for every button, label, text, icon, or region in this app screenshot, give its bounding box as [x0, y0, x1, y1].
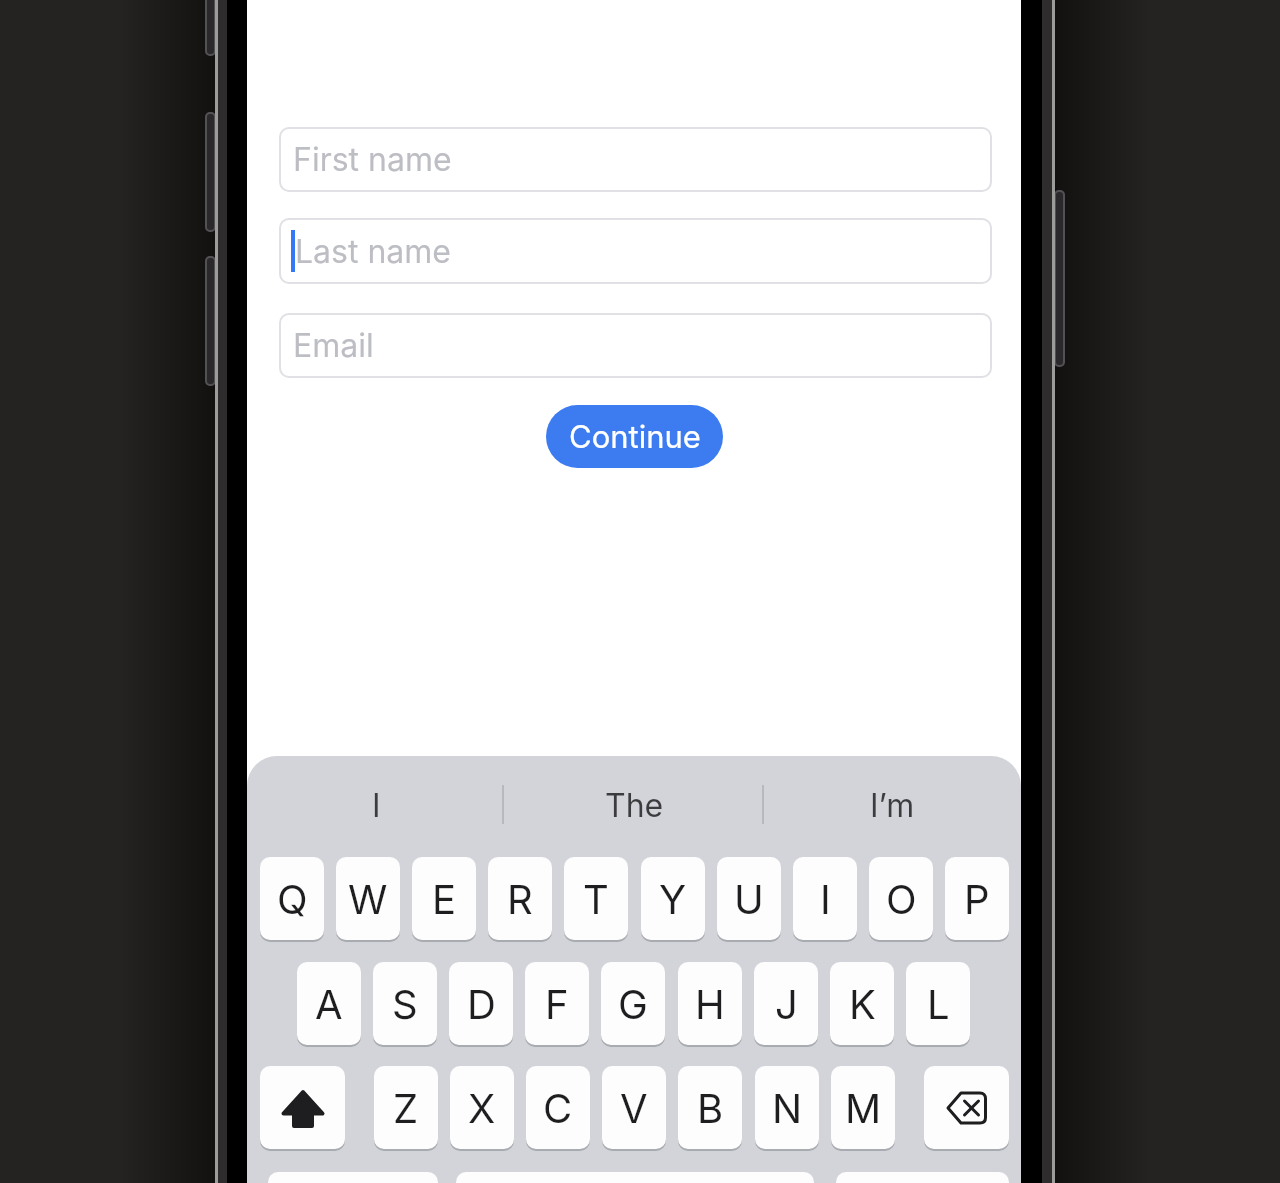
staticText: R: [507, 875, 533, 923]
button[interactable]: Q: [260, 857, 324, 940]
staticText: A: [315, 980, 343, 1028]
button[interactable]: [260, 1066, 345, 1149]
button[interactable]: I: [793, 857, 857, 940]
staticText: C: [543, 1084, 573, 1132]
staticText: G: [618, 980, 648, 1028]
button[interactable]: X: [450, 1066, 514, 1149]
button[interactable]: D: [449, 962, 513, 1045]
staticText: First name: [293, 140, 452, 179]
staticText: P: [964, 875, 990, 923]
button[interactable]: First name: [279, 127, 992, 192]
button[interactable]: [836, 1172, 1009, 1183]
button[interactable]: W: [336, 857, 400, 940]
button[interactable]: L: [906, 962, 970, 1045]
staticText: W: [348, 875, 388, 923]
staticText: Continue: [569, 418, 701, 456]
button[interactable]: The: [505, 776, 763, 834]
button[interactable]: G: [601, 962, 665, 1045]
button[interactable]: Continue: [546, 405, 723, 468]
button[interactable]: Last name: [279, 218, 992, 284]
button[interactable]: S: [373, 962, 437, 1045]
staticText: H: [695, 980, 725, 1028]
staticText: I’m: [870, 786, 915, 825]
staticText: Q: [277, 875, 308, 923]
button[interactable]: Y: [641, 857, 705, 940]
button[interactable]: I’m: [763, 776, 1021, 834]
staticText: The: [605, 786, 664, 825]
staticText: D: [467, 980, 496, 1028]
button[interactable]: [268, 1172, 438, 1183]
button[interactable]: E: [412, 857, 476, 940]
button[interactable]: V: [602, 1066, 666, 1149]
staticText: B: [697, 1084, 724, 1132]
button[interactable]: U: [717, 857, 781, 940]
staticText: I: [372, 786, 381, 825]
staticText: X: [468, 1084, 496, 1132]
staticText: L: [927, 980, 950, 1028]
staticText: S: [392, 980, 418, 1028]
staticText: I: [820, 875, 831, 923]
button[interactable]: A: [297, 962, 361, 1045]
staticText: Email: [293, 326, 374, 365]
staticText: E: [432, 875, 457, 923]
staticText: N: [772, 1084, 803, 1132]
button[interactable]: C: [526, 1066, 590, 1149]
button[interactable]: M: [831, 1066, 895, 1149]
staticText: O: [886, 875, 917, 923]
staticText: F: [545, 980, 569, 1028]
button[interactable]: [924, 1066, 1009, 1149]
staticText: T: [583, 875, 609, 923]
staticText: Last name: [295, 232, 451, 271]
staticText: V: [620, 1084, 648, 1132]
staticText: U: [734, 875, 764, 923]
button[interactable]: O: [869, 857, 933, 940]
button[interactable]: P: [945, 857, 1009, 940]
button[interactable]: T: [564, 857, 628, 940]
staticText: K: [849, 980, 876, 1028]
button[interactable]: B: [678, 1066, 742, 1149]
button[interactable]: F: [525, 962, 589, 1045]
button[interactable]: J: [754, 962, 818, 1045]
button[interactable]: Email: [279, 313, 992, 378]
staticText: J: [775, 980, 798, 1028]
button[interactable]: [456, 1172, 814, 1183]
button[interactable]: H: [678, 962, 742, 1045]
button[interactable]: Z: [374, 1066, 438, 1149]
staticText: Z: [393, 1084, 419, 1132]
button[interactable]: I: [247, 776, 505, 834]
button[interactable]: K: [830, 962, 894, 1045]
button[interactable]: N: [755, 1066, 819, 1149]
staticText: M: [845, 1084, 882, 1132]
button[interactable]: R: [488, 857, 552, 940]
staticText: Y: [659, 875, 687, 923]
